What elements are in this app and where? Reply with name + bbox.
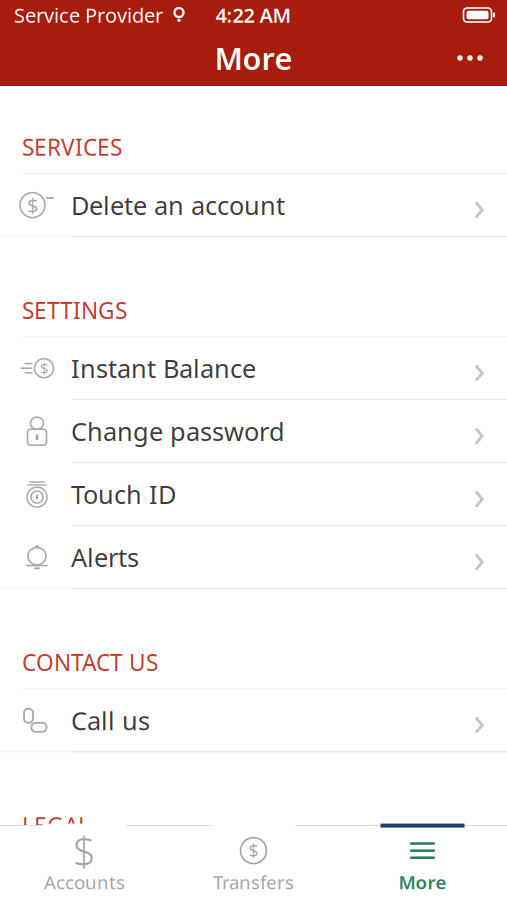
staticText: More: [398, 870, 446, 894]
staticText: Alerts: [71, 540, 139, 574]
staticText: ›: [473, 342, 485, 395]
staticText: Call us: [71, 703, 150, 737]
staticText: Transfers: [213, 870, 294, 894]
button[interactable]: $: [0, 826, 169, 900]
button[interactable]: Alerts: [0, 526, 507, 588]
staticText: 4:22 AM: [215, 2, 291, 28]
staticText: ›: [473, 405, 485, 458]
staticText: LEGAL: [22, 810, 90, 840]
staticText: ›: [473, 694, 485, 747]
button[interactable]: More options: [441, 36, 499, 80]
staticText: CONTACT US: [22, 647, 158, 677]
button[interactable]: Call us: [0, 689, 507, 751]
staticText: $: [40, 358, 48, 378]
button[interactable]: $: [0, 174, 507, 236]
staticText: ›: [473, 178, 485, 232]
button[interactable]: $: [169, 826, 338, 900]
staticText: Change password: [71, 414, 285, 448]
button[interactable]: Change password: [0, 400, 507, 462]
staticText: $: [248, 839, 258, 862]
staticText: $: [27, 192, 38, 218]
staticText: Touch ID: [71, 477, 176, 511]
staticText: SERVICES: [22, 132, 122, 162]
staticText: SETTINGS: [22, 295, 127, 325]
staticText: ›: [473, 531, 485, 584]
staticText: ›: [473, 468, 485, 521]
button[interactable]: $: [0, 337, 507, 399]
button[interactable]: Touch ID: [0, 463, 507, 525]
staticText: Instant Balance: [71, 351, 256, 385]
staticText: Service Provider: [14, 2, 163, 28]
staticText: Accounts: [44, 870, 125, 894]
staticText: $: [73, 824, 96, 877]
staticText: Delete an account: [71, 188, 285, 222]
button[interactable]: More: [338, 826, 507, 900]
staticText: More: [214, 38, 292, 78]
